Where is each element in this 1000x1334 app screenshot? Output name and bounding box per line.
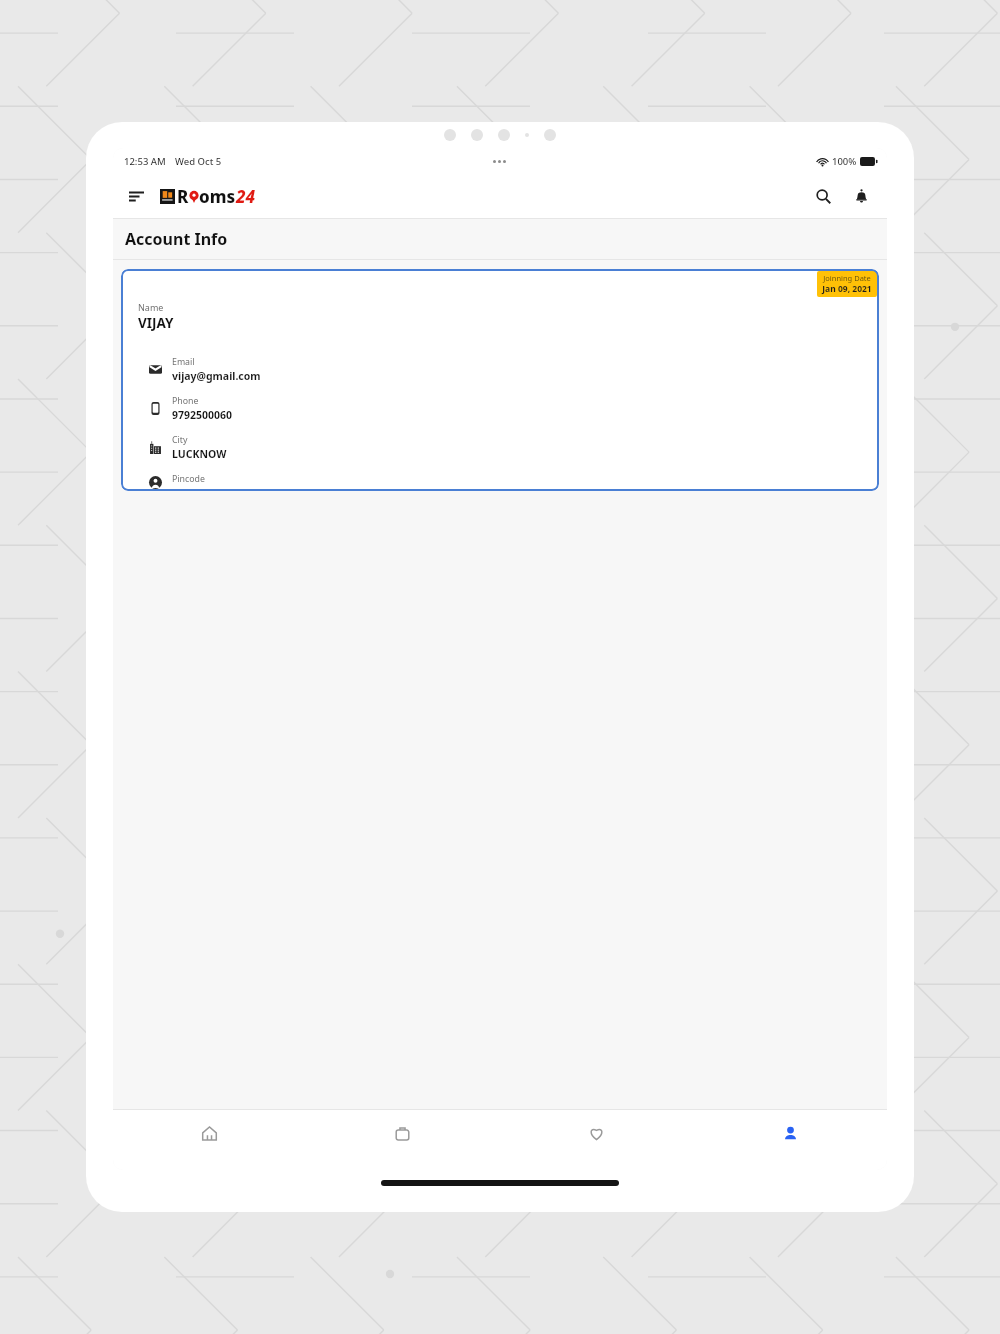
button[interactable]: Home xyxy=(113,1110,306,1156)
staticText: 9792500060 xyxy=(172,408,233,422)
staticText: Phone xyxy=(172,395,199,407)
staticText: LUCKNOW xyxy=(172,447,227,461)
staticText: Name xyxy=(138,301,164,313)
button[interactable]: Pincode xyxy=(138,473,879,491)
button[interactable]: Search xyxy=(807,180,839,212)
button[interactable]: Email xyxy=(138,356,879,383)
staticText: oms xyxy=(199,185,236,208)
staticText: VIJAY xyxy=(138,314,174,332)
button[interactable]: Notifications xyxy=(845,180,877,212)
button[interactable]: Account xyxy=(693,1110,887,1156)
staticText: Wed Oct 5 xyxy=(175,155,222,168)
button[interactable]: Joinning Date xyxy=(121,269,879,491)
staticText: R xyxy=(177,185,189,208)
staticText: vijay@gmail.com xyxy=(172,369,261,383)
staticText: Jan 09, 2021 xyxy=(822,283,872,295)
button[interactable]: Menu xyxy=(121,181,151,211)
staticText: City xyxy=(172,434,188,446)
staticText: Joinning Date xyxy=(823,273,871,283)
button[interactable]: City xyxy=(138,434,879,461)
button[interactable]: Phone xyxy=(138,395,879,422)
button[interactable]: Bookings xyxy=(306,1110,499,1156)
staticText: Pincode xyxy=(172,473,205,485)
staticText: 226020 xyxy=(172,486,209,491)
staticText: 12:53 AM xyxy=(124,155,166,168)
staticText: 100% xyxy=(832,155,857,168)
staticText: 24 xyxy=(236,185,256,208)
staticText: Account Info xyxy=(125,228,228,250)
button[interactable]: Favourites xyxy=(499,1110,693,1156)
staticText: Email xyxy=(172,356,195,368)
